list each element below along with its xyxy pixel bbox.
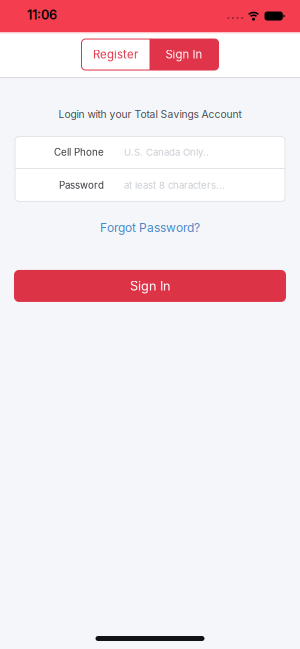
staticText: U.S. Canada Only.. (124, 146, 209, 158)
staticText: Register (93, 48, 138, 61)
staticText: Sign In (130, 278, 170, 294)
staticText: Sign In (165, 48, 202, 61)
staticText: at least 8 characters... (124, 179, 225, 191)
staticText: Cell Phone (54, 146, 104, 158)
staticText: 11:06 (27, 7, 57, 23)
staticText: Password (59, 179, 104, 191)
staticText: Login with your Total Savings Account (58, 108, 241, 120)
staticText: Forgot Password? (100, 220, 200, 235)
